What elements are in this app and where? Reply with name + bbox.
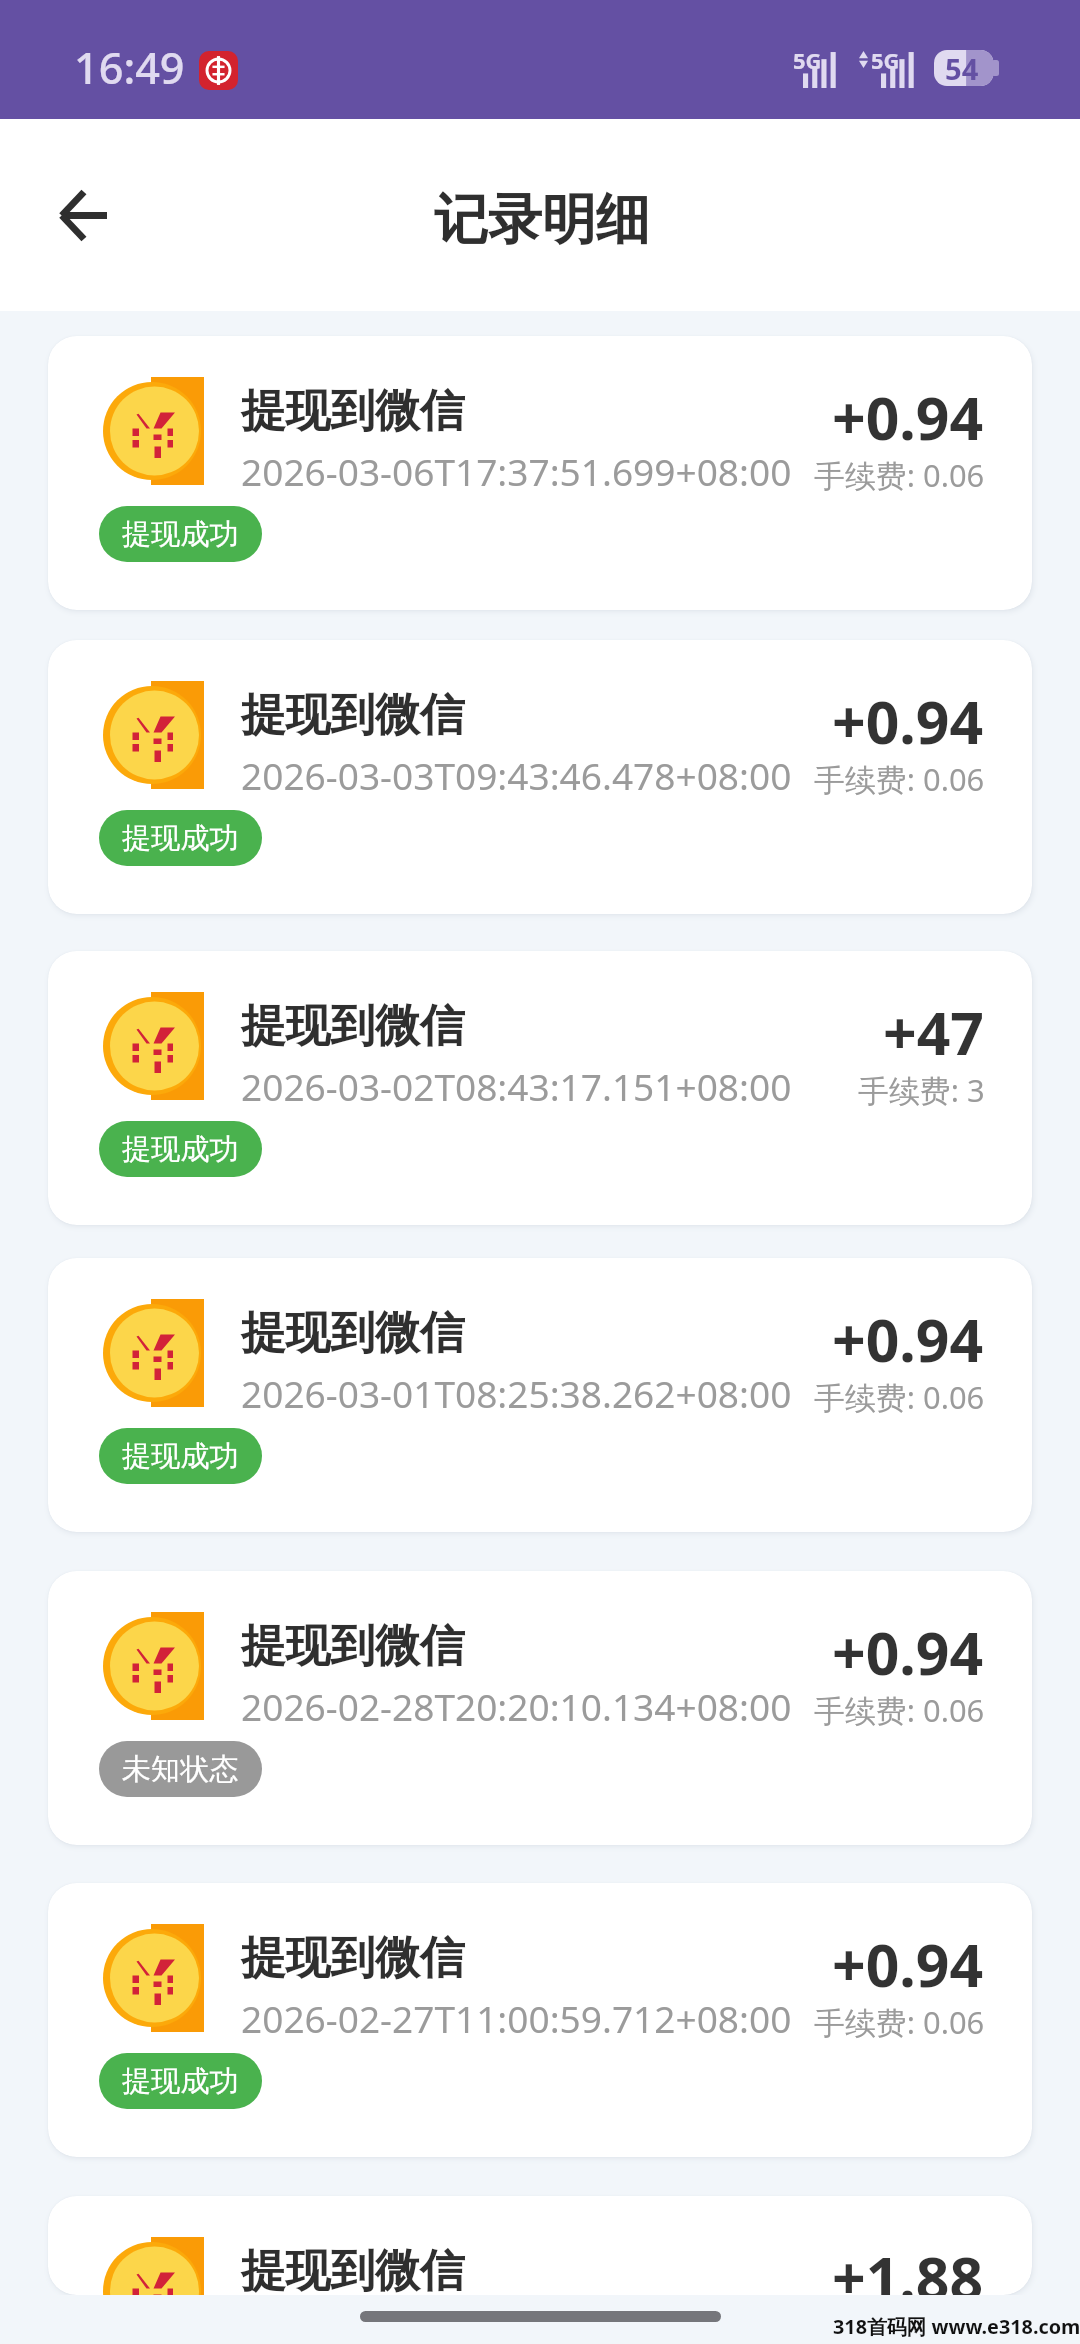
staticText: 手续费: 0.06: [814, 758, 985, 800]
staticText: 记录明细: [434, 186, 650, 254]
staticText: 2026-03-03T09:43:46.478+08:00: [241, 750, 792, 800]
button[interactable]: 提现成功: [99, 2053, 262, 2109]
staticText: 提现成功: [122, 516, 239, 553]
staticText: +0.94: [832, 681, 984, 761]
staticText: 提现成功: [122, 1131, 239, 1168]
staticText: 提现到微信: [241, 687, 465, 743]
button[interactable]: 提现成功: [99, 506, 262, 562]
staticText: 5G: [793, 46, 822, 76]
staticText: +0.94: [832, 1299, 984, 1379]
staticText: 未知状态: [122, 1751, 239, 1788]
staticText: 提现到微信: [241, 1618, 465, 1674]
staticText: 手续费: 0.06: [814, 1689, 985, 1731]
staticText: 16:49: [74, 38, 185, 97]
button[interactable]: 提现到微信: [48, 1258, 1032, 1532]
staticText: 2026-03-06T17:37:51.699+08:00: [241, 446, 792, 496]
staticText: 手续费: 0.06: [814, 454, 985, 496]
staticText: 54: [945, 49, 979, 85]
staticText: 手续费: 0.06: [814, 1376, 985, 1418]
staticText: 提现到微信: [241, 1930, 465, 1986]
button[interactable]: 提现到微信: [48, 640, 1032, 914]
button[interactable]: 未知状态: [99, 1741, 262, 1797]
staticText: 提现到微信: [241, 2243, 465, 2295]
button[interactable]: 提现到微信: [48, 1883, 1032, 2157]
button[interactable]: 提现到微信: [48, 2196, 1032, 2295]
staticText: 2026-03-01T08:25:38.262+08:00: [241, 1368, 792, 1418]
staticText: 提现成功: [122, 820, 239, 857]
staticText: 318首码网 www.e318.com: [833, 2313, 1080, 2340]
staticText: +0.94: [832, 1924, 984, 2004]
staticText: 提现成功: [122, 1438, 239, 1475]
staticText: 5G: [871, 46, 900, 76]
button[interactable]: 提现到微信: [48, 951, 1032, 1225]
staticText: +1.88: [832, 2237, 984, 2295]
staticText: 提现到微信: [241, 1305, 465, 1361]
staticText: 2026-02-27T11:00:59.712+08:00: [241, 1993, 792, 2043]
button[interactable]: 提现成功: [99, 1121, 262, 1177]
staticText: 提现到微信: [241, 998, 465, 1054]
staticText: 提现到微信: [241, 383, 465, 439]
button[interactable]: 提现成功: [99, 810, 262, 866]
staticText: +0.94: [832, 1612, 984, 1692]
button[interactable]: 提现到微信: [48, 1571, 1032, 1845]
staticText: 手续费: 3: [858, 1069, 985, 1111]
staticText: 2026-03-02T08:43:17.151+08:00: [241, 1061, 792, 1111]
staticText: +0.94: [832, 377, 984, 457]
button[interactable]: Back: [23, 155, 143, 275]
staticText: 2026-02-28T20:20:10.134+08:00: [241, 1681, 792, 1731]
staticText: 手续费: 0.06: [814, 2001, 985, 2043]
staticText: 提现成功: [122, 2063, 239, 2100]
staticText: +47: [883, 992, 984, 1072]
button[interactable]: 提现到微信: [48, 336, 1032, 610]
button[interactable]: 提现成功: [99, 1428, 262, 1484]
